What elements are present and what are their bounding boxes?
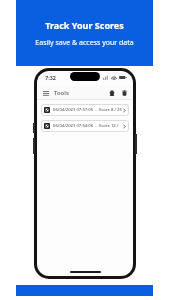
staticText: Easily save & access your data — [35, 38, 134, 48]
staticText: 06/04/2023 07:57:05 - Score 8 / 25 — [53, 107, 123, 113]
button[interactable]: Home — [107, 88, 117, 98]
staticText: Tools — [54, 89, 69, 97]
staticText: Track Your Scores — [45, 19, 124, 31]
button[interactable]: 06/04/2023 07:57:05 - Score 8 / 25 — [41, 104, 129, 116]
button[interactable]: Delete — [119, 88, 129, 98]
staticText: 7:32 — [45, 74, 56, 81]
button[interactable]: 06/04/2023 07:54:06 - Score 12 / 25 — [41, 120, 129, 132]
staticText: 06/04/2023 07:54:06 - Score 12 / 25 — [53, 123, 123, 129]
button[interactable]: Menu — [41, 88, 51, 98]
